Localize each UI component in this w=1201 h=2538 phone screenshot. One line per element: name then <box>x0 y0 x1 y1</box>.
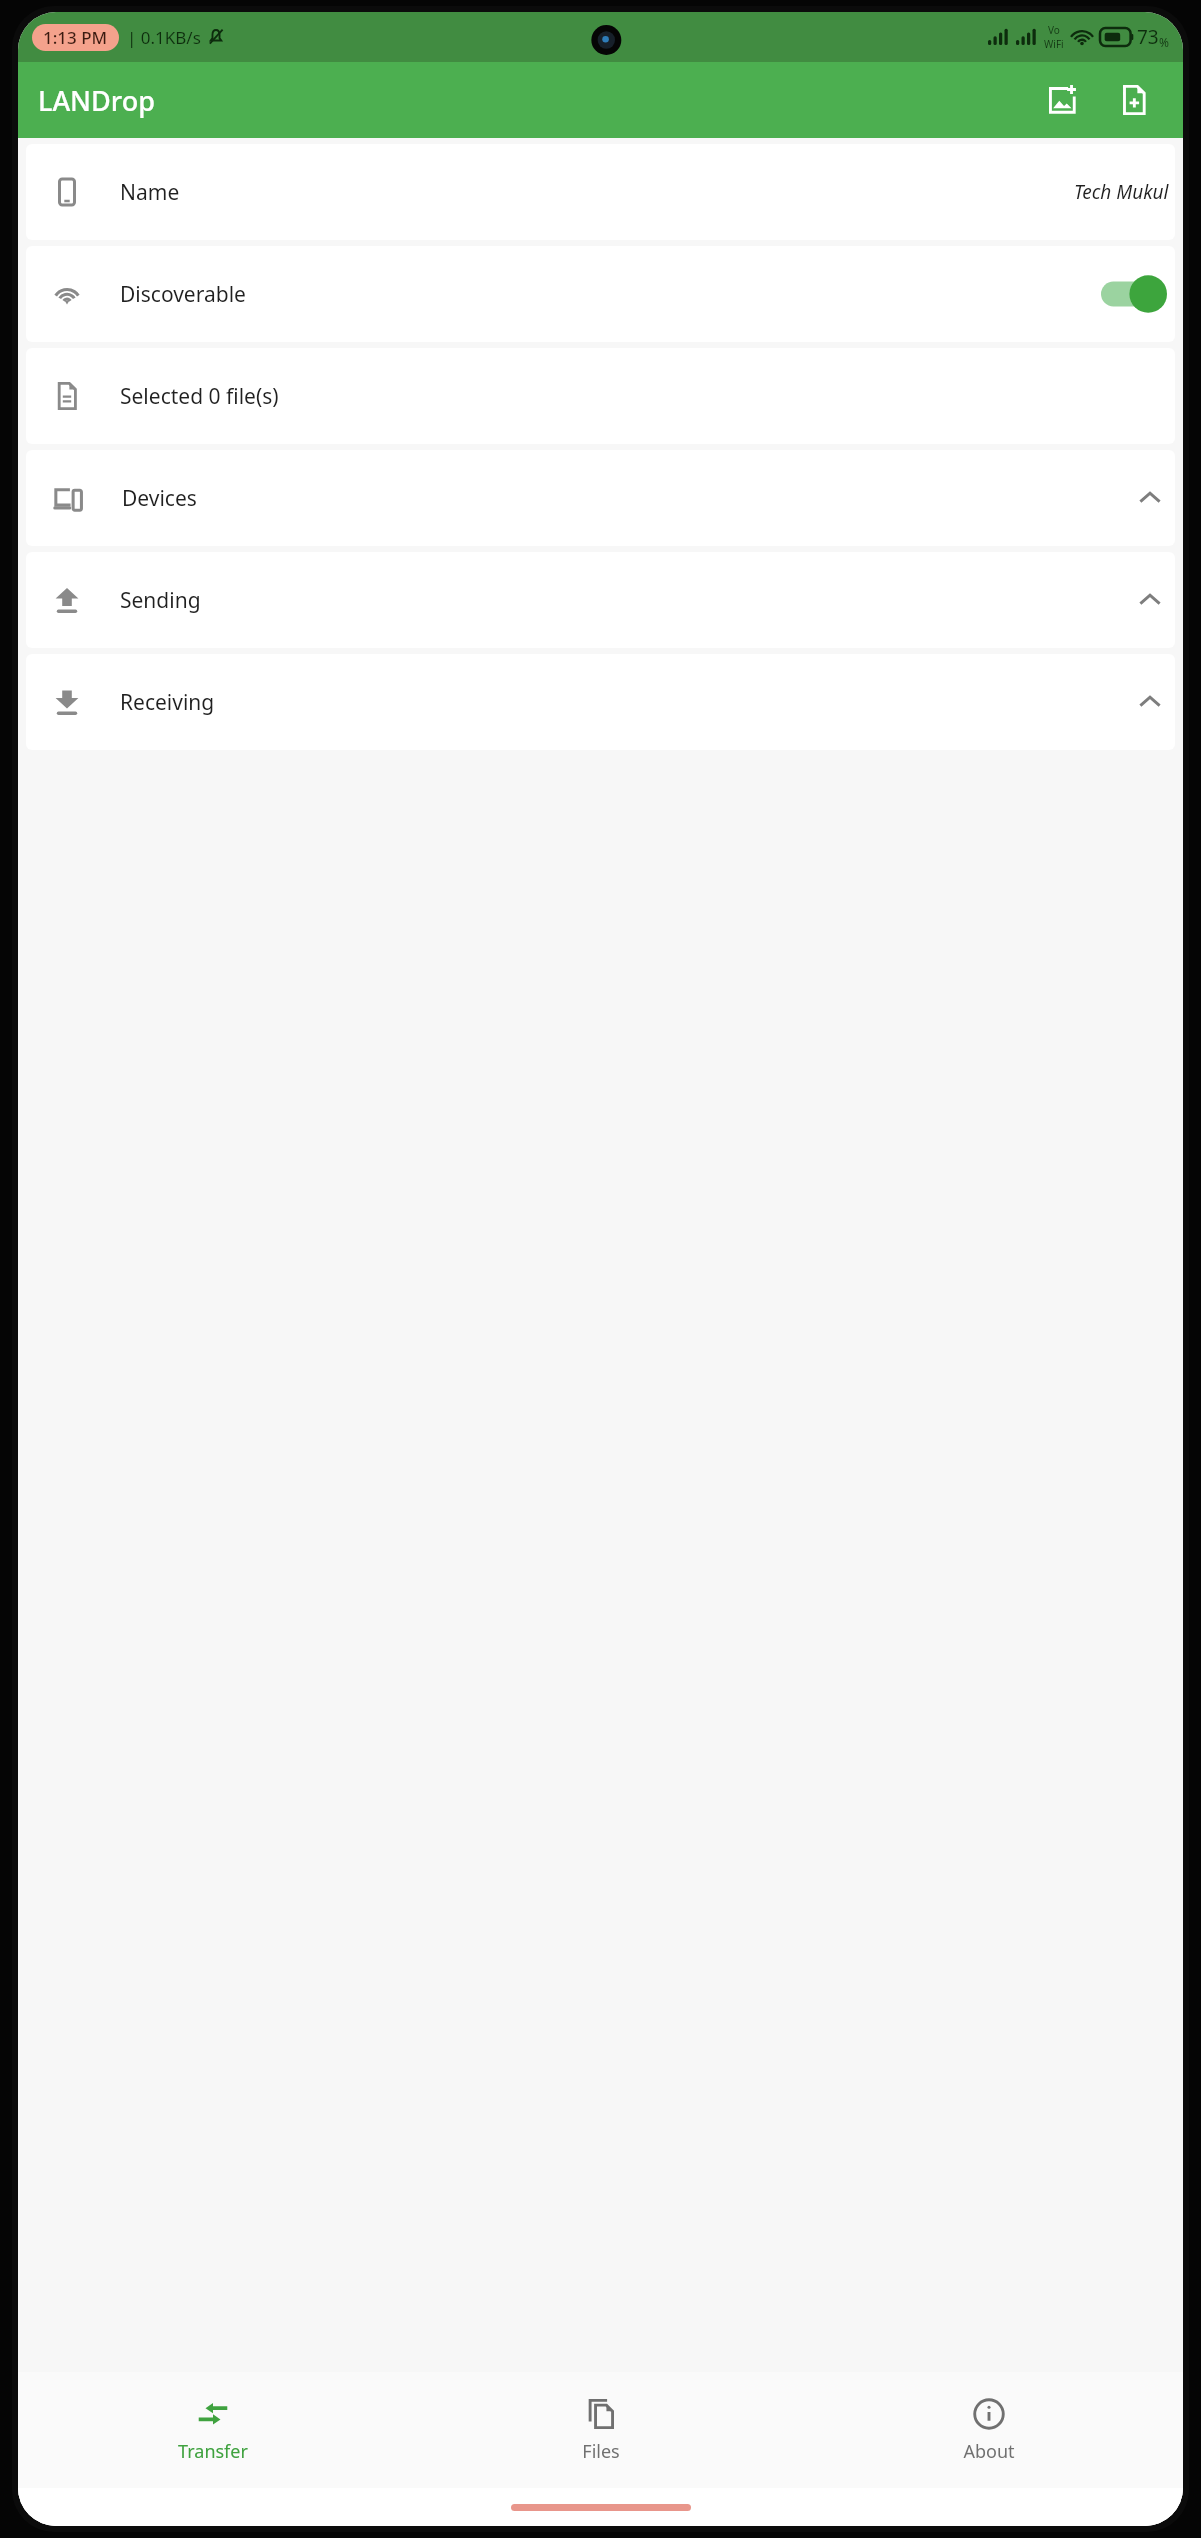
staticText: Name <box>120 178 180 207</box>
staticText: Selected 0 file(s) <box>120 382 279 411</box>
staticText: Files <box>582 2439 620 2464</box>
staticText: Devices <box>122 484 197 513</box>
button[interactable]: Sending <box>26 552 1175 648</box>
button[interactable]: Discoverable toggle <box>1101 274 1167 314</box>
button[interactable]: Transfer <box>18 2372 407 2488</box>
button[interactable]: Add file <box>1105 71 1163 129</box>
staticText: About <box>963 2439 1015 2464</box>
staticText: % <box>1159 34 1169 50</box>
button[interactable]: Selected 0 file(s) <box>26 348 1175 444</box>
staticText: 73 <box>1137 24 1159 50</box>
staticText: 1:13 PM <box>43 26 108 49</box>
button[interactable]: Devices <box>26 450 1175 546</box>
button[interactable]: Name <box>26 144 1175 240</box>
staticText: | 0.1KB/s <box>127 26 201 49</box>
staticText: LANDrop <box>38 82 155 119</box>
staticText: Discoverable <box>120 280 246 309</box>
staticText: Tech Mukul <box>1074 179 1169 205</box>
button[interactable]: Receiving <box>26 654 1175 750</box>
button[interactable]: Discoverable <box>26 246 1175 342</box>
button[interactable]: Files <box>407 2372 795 2488</box>
staticText: WiFi <box>1044 37 1064 51</box>
staticText: Transfer <box>178 2439 248 2464</box>
button[interactable]: About <box>795 2372 1183 2488</box>
staticText: Sending <box>120 586 201 615</box>
button[interactable]: Add image <box>1033 71 1091 129</box>
staticText: Vo <box>1048 23 1060 37</box>
staticText: Receiving <box>120 688 215 717</box>
